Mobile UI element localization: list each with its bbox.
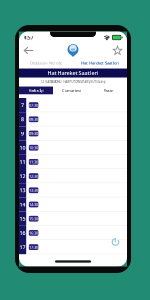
staticText: 11 xyxy=(20,158,26,165)
staticText: 15 xyxy=(20,215,26,222)
button[interactable]: Refresh xyxy=(111,237,127,256)
staticText: 15:30 xyxy=(29,216,38,221)
button[interactable]: Hafta İçi xyxy=(19,86,53,94)
staticText: 7 xyxy=(21,102,24,109)
staticText: 07:30 xyxy=(29,102,38,108)
staticText: 13:30 xyxy=(29,188,38,193)
staticText: 13 xyxy=(20,187,26,194)
staticText: 11:30 xyxy=(29,159,38,164)
button[interactable]: Cumartesi xyxy=(53,86,90,94)
staticText: Hat Hareket Saatleri xyxy=(81,60,119,66)
staticText: 17 xyxy=(20,244,26,251)
staticText: 10:30 xyxy=(29,145,38,150)
staticText: Cumartesi xyxy=(62,88,81,93)
staticText: 10 xyxy=(20,144,26,151)
staticText: 8 xyxy=(21,116,24,123)
staticText: Otobüsüm Nerede xyxy=(30,60,62,66)
staticText: 16 xyxy=(20,229,26,236)
staticText: 09:30 xyxy=(29,131,38,136)
button[interactable]: Otobüsüm Nerede xyxy=(19,57,73,68)
staticText: 14 xyxy=(20,201,26,208)
staticText: 14:30 xyxy=(29,202,38,207)
staticText: Hafta İçi xyxy=(28,88,43,93)
staticText: 4:57 xyxy=(23,34,33,41)
staticText: 16:30 xyxy=(29,230,38,235)
staticText: 17:30 xyxy=(29,244,38,250)
staticText: Hat Hareket Saatleri xyxy=(47,69,98,77)
button[interactable]: Pazar xyxy=(90,86,127,94)
button[interactable]: Add to favorites xyxy=(110,43,124,57)
staticText: Pazar xyxy=(103,88,113,93)
staticText: 12:30 xyxy=(29,173,38,179)
staticText: 08:30 xyxy=(29,117,38,122)
staticText: 12 xyxy=(20,173,26,180)
button[interactable]: Hat Hareket Saatleri xyxy=(73,57,127,68)
staticText: 12 KASTAMONU HARPUT DEVLET ARŞ KÜT (Gidi… xyxy=(40,80,105,84)
button[interactable]: Back xyxy=(21,43,35,57)
staticText: 9 xyxy=(21,130,24,137)
